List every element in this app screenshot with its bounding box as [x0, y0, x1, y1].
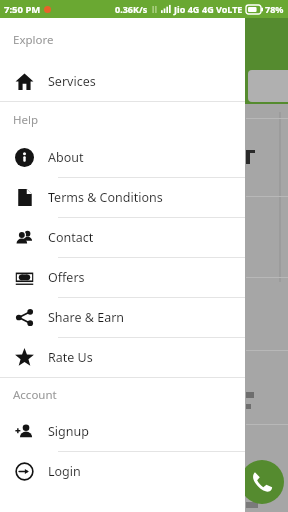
- staticText: 4G: [202, 3, 214, 15]
- staticText: 7:50 PM: [4, 3, 41, 16]
- button[interactable]: Rate Us: [0, 338, 245, 377]
- staticText: Services: [48, 73, 96, 90]
- staticText: 78%: [265, 3, 284, 15]
- staticText: Offers: [48, 269, 85, 286]
- staticText: Jio 4G: [174, 3, 200, 15]
- button[interactable]: Share & Earn: [0, 298, 245, 337]
- staticText: Terms & Conditions: [48, 189, 163, 206]
- button[interactable]: Terms & Conditions: [0, 178, 245, 217]
- button[interactable]: Call: [240, 460, 284, 504]
- button[interactable]: Signup: [0, 412, 245, 451]
- button[interactable]: Contact: [0, 218, 245, 257]
- button[interactable]: Services: [0, 62, 245, 101]
- staticText: Account: [13, 387, 57, 403]
- staticText: Signup: [48, 423, 89, 440]
- staticText: Login: [48, 463, 81, 480]
- staticText: Share & Earn: [48, 309, 125, 326]
- staticText: About: [48, 149, 84, 166]
- button[interactable]: Offers: [0, 258, 245, 297]
- staticText: 0.36K/s: [115, 3, 148, 15]
- staticText: Explore: [13, 32, 54, 48]
- staticText: Contact: [48, 229, 94, 246]
- staticText: Help: [13, 112, 39, 128]
- staticText: VoLTE: [216, 3, 243, 15]
- button[interactable]: Login: [0, 452, 245, 491]
- button[interactable]: About: [0, 138, 245, 177]
- staticText: Rate Us: [48, 349, 93, 366]
